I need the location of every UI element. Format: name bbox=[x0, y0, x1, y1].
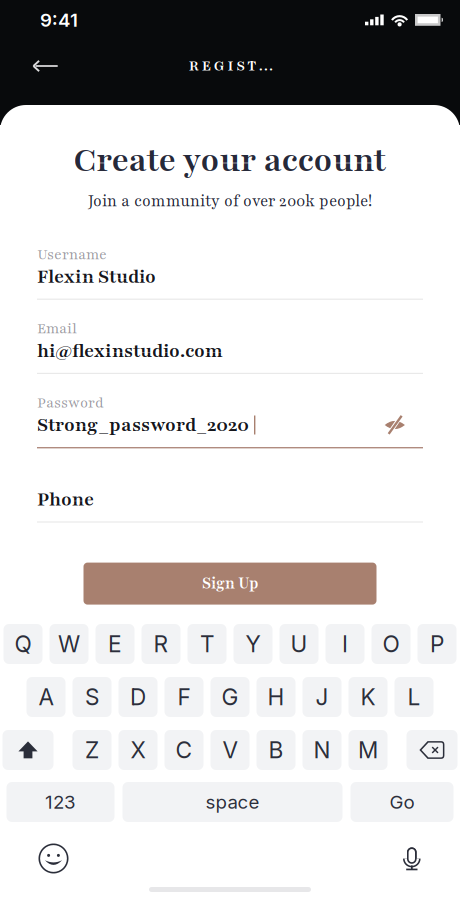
button[interactable]: S bbox=[72, 677, 111, 717]
staticText: A bbox=[38, 683, 53, 711]
staticText: L bbox=[407, 683, 420, 711]
button[interactable]: T bbox=[187, 624, 226, 664]
button[interactable]: B bbox=[256, 730, 295, 770]
staticText: I bbox=[342, 630, 348, 658]
button[interactable]: A bbox=[26, 677, 65, 717]
button[interactable]: F bbox=[164, 677, 203, 717]
button[interactable]: Emoji bbox=[38, 843, 69, 874]
button[interactable]: Password bbox=[37, 395, 423, 448]
button[interactable]: 123 bbox=[6, 782, 114, 822]
staticText: V bbox=[222, 736, 237, 764]
button[interactable]: K bbox=[348, 677, 387, 717]
button[interactable]: M bbox=[348, 730, 387, 770]
button[interactable]: Username bbox=[37, 247, 423, 300]
staticText: H bbox=[267, 683, 284, 711]
staticText: Create your account bbox=[73, 138, 386, 183]
button[interactable]: P bbox=[417, 624, 456, 664]
staticText: Phone bbox=[37, 487, 94, 512]
staticText: Go bbox=[389, 791, 414, 813]
button[interactable]: V bbox=[210, 730, 249, 770]
staticText: C bbox=[175, 736, 192, 764]
button[interactable]: Z bbox=[72, 730, 111, 770]
staticText: M bbox=[358, 736, 378, 764]
staticText: E bbox=[108, 630, 122, 658]
staticText: Join a community of over 200k people! bbox=[88, 191, 372, 212]
button[interactable]: U bbox=[279, 624, 318, 664]
staticText: P bbox=[430, 630, 444, 658]
staticText: Email bbox=[37, 319, 77, 338]
staticText: 123 bbox=[45, 791, 76, 813]
staticText: 9:41 bbox=[40, 9, 78, 31]
staticText: R bbox=[153, 630, 168, 658]
button[interactable]: O bbox=[371, 624, 410, 664]
button[interactable]: J bbox=[302, 677, 341, 717]
button[interactable]: D bbox=[118, 677, 157, 717]
staticText: REGISTER bbox=[189, 56, 282, 76]
button[interactable]: Email bbox=[37, 321, 423, 374]
staticText: Y bbox=[245, 630, 260, 658]
staticText: Z bbox=[85, 736, 99, 764]
staticText: K bbox=[360, 683, 375, 711]
button[interactable]: I bbox=[325, 624, 364, 664]
staticText: space bbox=[205, 791, 259, 813]
staticText: Username bbox=[37, 245, 107, 264]
staticText: W bbox=[58, 630, 80, 658]
button[interactable]: Back bbox=[0, 49, 66, 83]
staticText: B bbox=[268, 736, 283, 764]
staticText: D bbox=[130, 683, 146, 711]
staticText: S bbox=[85, 683, 99, 711]
button[interactable]: Shift bbox=[2, 730, 53, 770]
staticText: J bbox=[315, 683, 328, 711]
button[interactable]: Dictation bbox=[402, 846, 422, 871]
button[interactable]: C bbox=[164, 730, 203, 770]
button[interactable]: Q bbox=[3, 624, 42, 664]
staticText: hi@flexinstudio.com bbox=[37, 338, 223, 364]
button[interactable]: E bbox=[95, 624, 134, 664]
button[interactable]: space bbox=[122, 782, 342, 822]
staticText: Password bbox=[37, 393, 104, 413]
button[interactable]: X bbox=[118, 730, 157, 770]
staticText: Sign Up bbox=[202, 573, 258, 594]
staticText: F bbox=[177, 683, 190, 711]
button[interactable]: W bbox=[49, 624, 88, 664]
staticText: O bbox=[382, 630, 399, 658]
staticText: U bbox=[290, 630, 307, 658]
button[interactable]: L bbox=[394, 677, 433, 717]
staticText: Q bbox=[14, 630, 31, 658]
button[interactable]: Y bbox=[233, 624, 272, 664]
staticText: Strong_password_2020 bbox=[37, 412, 249, 438]
staticText: X bbox=[130, 736, 145, 764]
staticText: Flexin Studio bbox=[37, 264, 156, 289]
button[interactable]: Go bbox=[350, 782, 453, 822]
staticText: G bbox=[221, 683, 238, 711]
button[interactable]: G bbox=[210, 677, 249, 717]
button[interactable]: Sign Up bbox=[83, 563, 376, 605]
button[interactable]: R bbox=[141, 624, 180, 664]
button[interactable]: N bbox=[302, 730, 341, 770]
staticText: T bbox=[200, 630, 214, 658]
button[interactable]: H bbox=[256, 677, 295, 717]
button[interactable]: Delete bbox=[406, 730, 457, 770]
staticText: N bbox=[313, 736, 330, 764]
button[interactable]: Phone bbox=[37, 469, 423, 523]
